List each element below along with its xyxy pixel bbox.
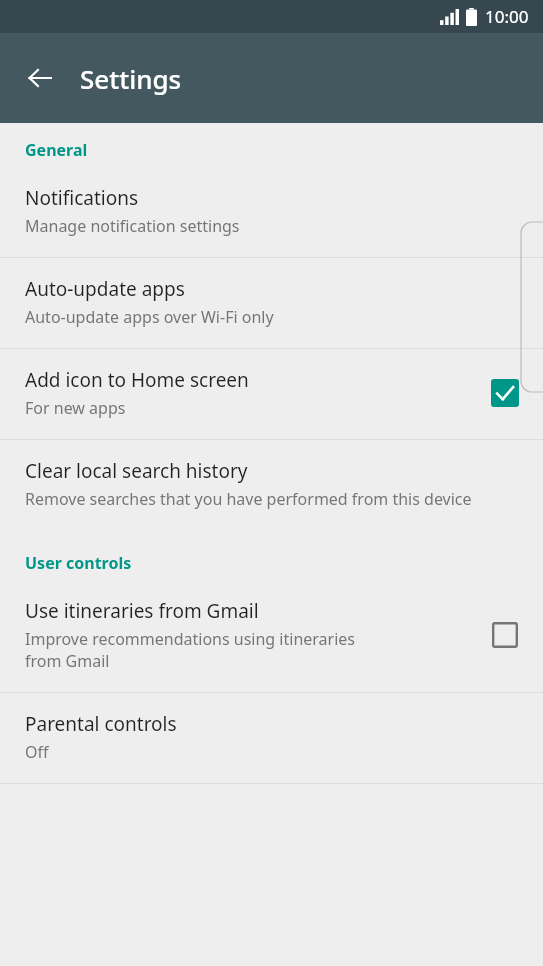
staticText: 10:00 [485,5,529,28]
button[interactable]: Add icon to Home screen [0,349,543,439]
button[interactable]: Clear local search history [0,440,543,530]
staticText: User controls [25,552,132,574]
staticText: Manage notification settings [25,215,240,237]
staticText: Settings [80,61,182,96]
button[interactable]: Checked [485,373,525,413]
staticText: For new apps [25,397,126,419]
staticText: Clear local search history [25,458,248,484]
staticText: Auto-update apps [25,276,185,302]
staticText: Use itineraries from Gmail [25,598,259,624]
button[interactable]: Parental controls [0,693,543,783]
staticText: Add icon to Home screen [25,367,249,393]
staticText: Auto-update apps over Wi-Fi only [25,306,274,328]
button[interactable]: Back [14,52,66,104]
staticText: Improve recommendations using itinerarie… [25,628,383,672]
staticText: Parental controls [25,711,177,737]
button[interactable]: Auto-update apps [0,258,543,348]
button[interactable]: Unchecked [485,615,525,655]
button[interactable]: Use itineraries from Gmail [0,580,543,692]
staticText: Remove searches that you have performed … [25,488,472,510]
staticText: Notifications [25,185,139,211]
button[interactable]: Notifications [0,167,543,257]
staticText: Off [25,741,49,763]
staticText: General [25,139,88,161]
